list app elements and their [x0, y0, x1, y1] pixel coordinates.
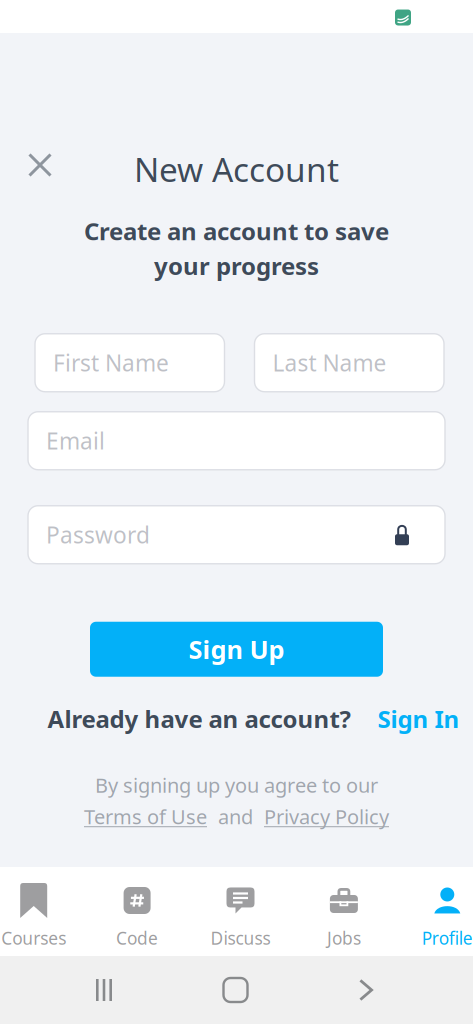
button[interactable]: Sign In	[377, 703, 459, 735]
staticText: Sign Up	[188, 632, 284, 666]
button[interactable]: Discuss	[189, 867, 292, 956]
staticText: Sign In	[377, 703, 459, 735]
staticText: New Account	[134, 147, 339, 191]
staticText: Code	[116, 926, 158, 949]
button[interactable]: Recents	[0, 979, 130, 1001]
button[interactable]: Sign Up	[90, 622, 383, 677]
button[interactable]: Terms of Use	[84, 803, 207, 830]
staticText: Discuss	[210, 926, 270, 949]
button[interactable]: Profile	[396, 867, 473, 956]
staticText: Already have an account?	[47, 703, 350, 735]
staticText: Create an account to save	[84, 215, 389, 247]
staticText: your progress	[154, 250, 319, 282]
button[interactable]: Privacy Policy	[264, 803, 389, 830]
staticText: Privacy Policy	[264, 803, 389, 830]
staticText: Jobs	[327, 926, 361, 949]
button[interactable]: Code	[85, 867, 189, 956]
staticText: Password	[46, 520, 150, 550]
staticText: By signing up you agree to our	[95, 772, 378, 798]
staticText: and	[218, 803, 253, 830]
button[interactable]: Courses	[0, 867, 85, 956]
staticText: Courses	[1, 926, 66, 949]
button[interactable]: Close	[19, 144, 61, 186]
staticText: Last Name	[272, 348, 386, 378]
staticText: Profile	[422, 926, 473, 949]
staticText: Email	[46, 426, 105, 456]
staticText: Terms of Use	[84, 803, 207, 830]
button[interactable]: Jobs	[292, 867, 396, 956]
button[interactable]: Back	[341, 979, 473, 1001]
button[interactable]: Home	[205, 978, 265, 1002]
staticText: First Name	[53, 348, 169, 378]
